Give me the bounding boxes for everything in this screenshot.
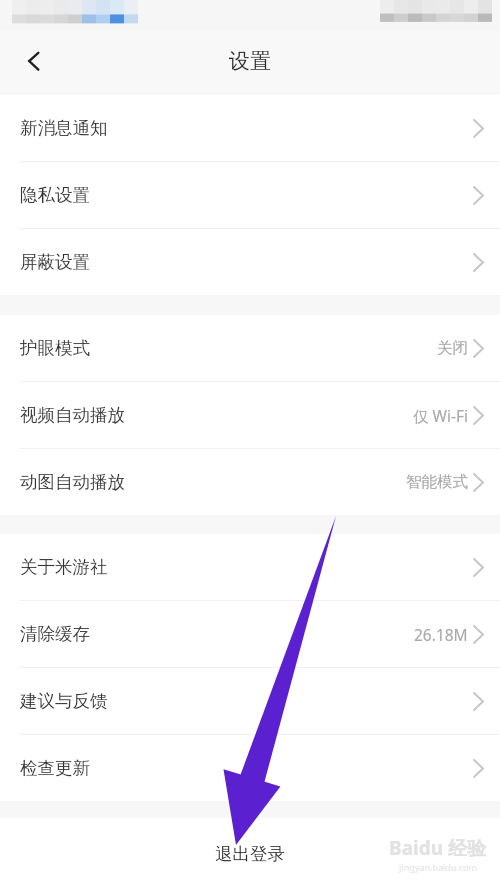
staticText: 隐私设置 xyxy=(20,184,90,206)
button[interactable]: 动图自动播放 xyxy=(0,449,500,515)
button[interactable]: Back xyxy=(12,39,56,83)
staticText: 屏蔽设置 xyxy=(20,251,90,273)
button[interactable]: 关于米游社 xyxy=(0,534,500,600)
button[interactable]: 新消息通知 xyxy=(0,95,500,161)
staticText: 仅 Wi-Fi xyxy=(413,405,468,426)
staticText: 26.18M xyxy=(414,624,468,645)
staticText: 建议与反馈 xyxy=(20,690,108,712)
button[interactable]: 清除缓存 xyxy=(0,601,500,667)
button[interactable]: 检查更新 xyxy=(0,735,500,801)
staticText: 视频自动播放 xyxy=(20,404,125,426)
staticText: 新消息通知 xyxy=(20,117,108,139)
staticText: 关闭 xyxy=(437,338,468,358)
staticText: jingyan.baidu.com xyxy=(399,861,477,873)
button[interactable]: 屏蔽设置 xyxy=(0,229,500,295)
staticText: 护眼模式 xyxy=(20,337,90,359)
staticText: Baidu 经验 xyxy=(389,835,486,861)
staticText: 检查更新 xyxy=(20,757,90,779)
button[interactable]: 隐私设置 xyxy=(0,162,500,228)
button[interactable]: 建议与反馈 xyxy=(0,668,500,734)
staticText: 关于米游社 xyxy=(20,556,108,578)
staticText: 设置 xyxy=(229,48,271,74)
staticText: 动图自动播放 xyxy=(20,471,125,493)
staticText: 智能模式 xyxy=(406,472,468,492)
button[interactable]: 护眼模式 xyxy=(0,315,500,381)
staticText: 清除缓存 xyxy=(20,623,90,645)
button[interactable]: 视频自动播放 xyxy=(0,382,500,448)
button[interactable]: 退出登录 xyxy=(0,818,500,889)
staticText: 退出登录 xyxy=(215,843,285,865)
